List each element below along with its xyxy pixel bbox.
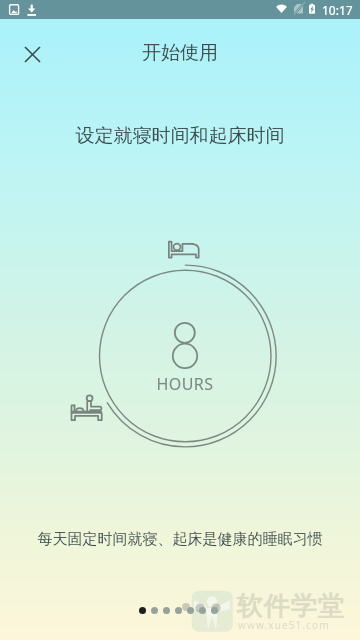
button[interactable]: Page 1 (139, 607, 146, 614)
button[interactable]: Page 5 (187, 607, 194, 614)
button[interactable]: Close (8, 30, 56, 78)
button[interactable]: Page 2 (151, 607, 158, 614)
staticText: 软件学堂 (236, 590, 344, 623)
staticText: 10:17 (322, 2, 353, 18)
staticText: www.xue51.com (238, 618, 330, 632)
button[interactable]: Page 3 (163, 607, 170, 614)
button[interactable]: Page 4 (175, 607, 182, 614)
staticText: 每天固定时间就寝、起床是健康的睡眠习惯 (0, 530, 360, 549)
button[interactable]: Page 6 (199, 607, 206, 614)
staticText: 开始使用 (142, 41, 218, 65)
staticText: HOURS (5, 373, 360, 395)
staticText: 设定就寝时间和起床时间 (0, 124, 360, 148)
button[interactable]: Page 7 (211, 607, 218, 614)
